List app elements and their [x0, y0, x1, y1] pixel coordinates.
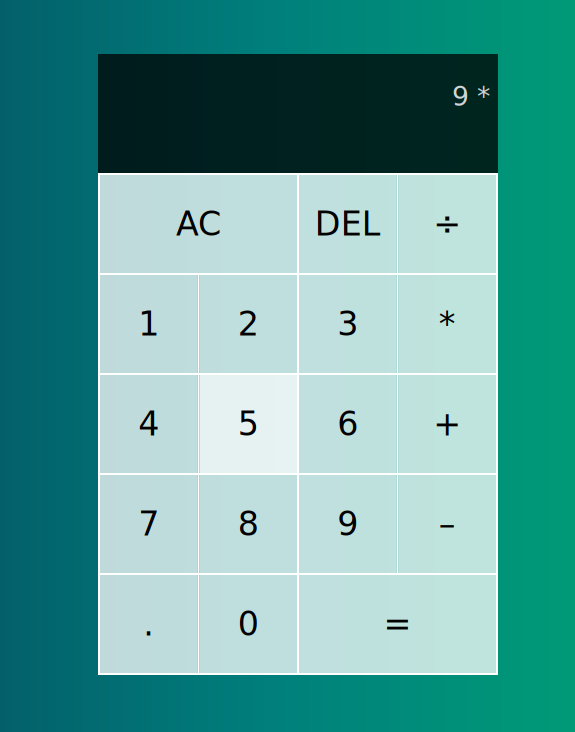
staticText: 3 [337, 305, 358, 343]
button[interactable]: 7 [100, 475, 197, 573]
staticText: 9 * [452, 81, 490, 112]
button[interactable]: 8 [199, 475, 297, 573]
button[interactable]: 4 [100, 375, 197, 473]
staticText: 0 [238, 605, 259, 643]
button[interactable]: Add [398, 375, 496, 473]
button[interactable]: Multiply [398, 275, 496, 373]
button[interactable]: Delete [299, 175, 396, 273]
button[interactable]: All clear [100, 175, 297, 273]
staticText: * [439, 305, 456, 343]
staticText: AC [176, 205, 221, 243]
button[interactable]: Divide [398, 175, 496, 273]
staticText: . [143, 605, 154, 643]
staticText: 4 [138, 405, 159, 443]
button[interactable]: 9 [299, 475, 396, 573]
button[interactable]: 0 [199, 575, 297, 673]
staticText: 8 [238, 505, 259, 543]
staticText: ÷ [433, 205, 461, 243]
staticText: 7 [138, 505, 159, 543]
button[interactable]: 6 [299, 375, 396, 473]
staticText: 6 [337, 405, 358, 443]
staticText: = [383, 605, 411, 643]
staticText: 1 [138, 305, 159, 343]
button[interactable]: 2 [199, 275, 297, 373]
button[interactable]: 1 [100, 275, 197, 373]
staticText: 5 [238, 405, 259, 443]
staticText: DEL [315, 205, 381, 243]
staticText: – [439, 505, 456, 543]
button[interactable]: Subtract [398, 475, 496, 573]
staticText: 2 [238, 305, 259, 343]
button[interactable]: Equals [299, 575, 496, 673]
button[interactable]: Decimal point [100, 575, 197, 673]
button[interactable]: 3 [299, 275, 396, 373]
button[interactable]: 5 [199, 375, 297, 473]
staticText: 9 [337, 505, 358, 543]
staticText: + [433, 405, 461, 443]
